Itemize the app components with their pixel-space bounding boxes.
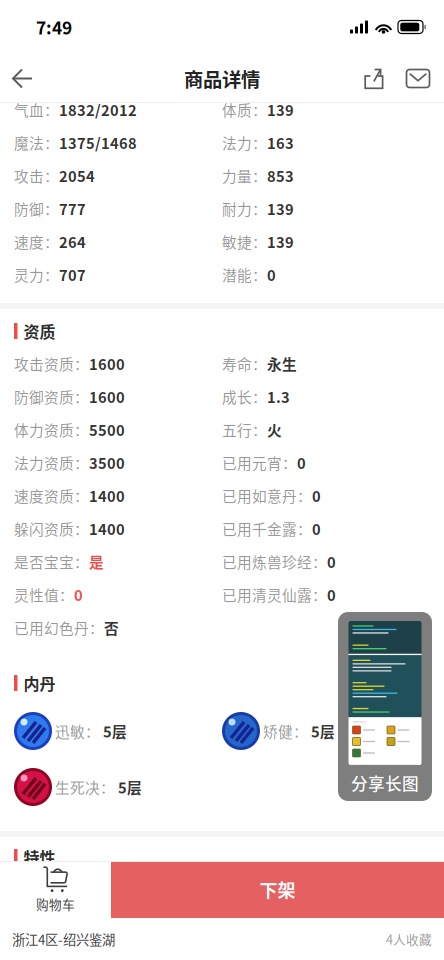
staticText: 0 (267, 264, 276, 285)
staticText: 成长： (222, 386, 267, 407)
staticText: 耐力： (222, 198, 267, 219)
staticText: 体力资质： (14, 419, 89, 440)
staticText: 敏捷： (222, 231, 267, 252)
staticText: 分享长图 (351, 771, 419, 795)
staticText: 是否宝宝： (14, 551, 89, 572)
staticText: 体质： (222, 99, 267, 120)
staticText: 已用炼兽珍经： (222, 551, 327, 572)
staticText: 潜能： (222, 264, 267, 285)
staticText: 速度资质： (14, 485, 89, 506)
button[interactable]: 返回 (0, 54, 44, 103)
staticText: 寿命： (222, 353, 267, 374)
staticText: 躲闪资质： (14, 518, 89, 539)
staticText: 攻击： (14, 165, 59, 186)
staticText: 已用千金露： (222, 518, 312, 539)
staticText: 1400 (89, 485, 125, 506)
staticText: 0 (327, 584, 336, 605)
staticText: 法力： (222, 132, 267, 153)
button[interactable]: 分享 (352, 54, 396, 103)
staticText: 火 (267, 419, 282, 440)
staticText: 1832/2012 (59, 99, 137, 120)
staticText: 0 (74, 584, 83, 605)
staticText: 法力资质： (14, 452, 89, 473)
staticText: 已用元宵： (222, 452, 297, 473)
staticText: 气血： (14, 99, 59, 120)
staticText: 777 (59, 198, 86, 219)
button[interactable]: 购物车 (0, 861, 111, 918)
staticText: 0 (327, 551, 336, 572)
staticText: 否 (104, 617, 119, 638)
staticText: 1.3 (267, 386, 290, 407)
staticText: 5500 (89, 419, 125, 440)
staticText: 7:49 (36, 14, 72, 40)
staticText: 0 (297, 452, 306, 473)
staticText: 已用幻色丹： (14, 617, 104, 638)
staticText: 1600 (89, 386, 125, 407)
button[interactable]: 私信 (396, 54, 440, 103)
staticText: 4人收藏 (386, 930, 432, 948)
staticText: 5层 (118, 776, 142, 798)
staticText: 灵力： (14, 264, 59, 285)
staticText: 内丹 (23, 671, 55, 695)
staticText: 灵性值： (14, 584, 74, 605)
staticText: 五行： (222, 419, 267, 440)
staticText: 防御资质： (14, 386, 89, 407)
staticText: 139 (267, 99, 294, 120)
staticText: 力量： (222, 165, 267, 186)
button[interactable]: 下架 (111, 861, 444, 918)
staticText: 139 (267, 198, 294, 219)
staticText: 迅敏： (55, 720, 100, 742)
staticText: 已用清灵仙露： (222, 584, 327, 605)
staticText: 3500 (89, 452, 125, 473)
staticText: 853 (267, 165, 294, 186)
staticText: 速度： (14, 231, 59, 252)
staticText: 矫健： (263, 720, 308, 742)
staticText: 浙江4区-绍兴鉴湖 (12, 929, 115, 949)
staticText: 永生 (267, 353, 297, 374)
staticText: 2054 (59, 165, 95, 186)
staticText: 264 (59, 231, 86, 252)
staticText: 5层 (311, 720, 335, 742)
staticText: 是 (89, 551, 104, 572)
staticText: 下架 (259, 876, 295, 903)
staticText: 已用如意丹： (222, 485, 312, 506)
staticText: 707 (59, 264, 86, 285)
staticText: 魔法： (14, 132, 59, 153)
staticText: 163 (267, 132, 294, 153)
staticText: 防御： (14, 198, 59, 219)
staticText: 5层 (103, 720, 127, 742)
staticText: 0 (312, 518, 321, 539)
staticText: 特性 (23, 845, 55, 869)
staticText: 购物车 (36, 895, 75, 913)
staticText: 1600 (89, 353, 125, 374)
staticText: 商品详情 (184, 64, 260, 92)
staticText: 0 (312, 485, 321, 506)
staticText: 攻击资质： (14, 353, 89, 374)
staticText: 139 (267, 231, 294, 252)
staticText: 生死决： (55, 776, 115, 798)
staticText: 1375/1468 (59, 132, 137, 153)
staticText: 资质 (23, 319, 55, 343)
staticText: 1400 (89, 518, 125, 539)
